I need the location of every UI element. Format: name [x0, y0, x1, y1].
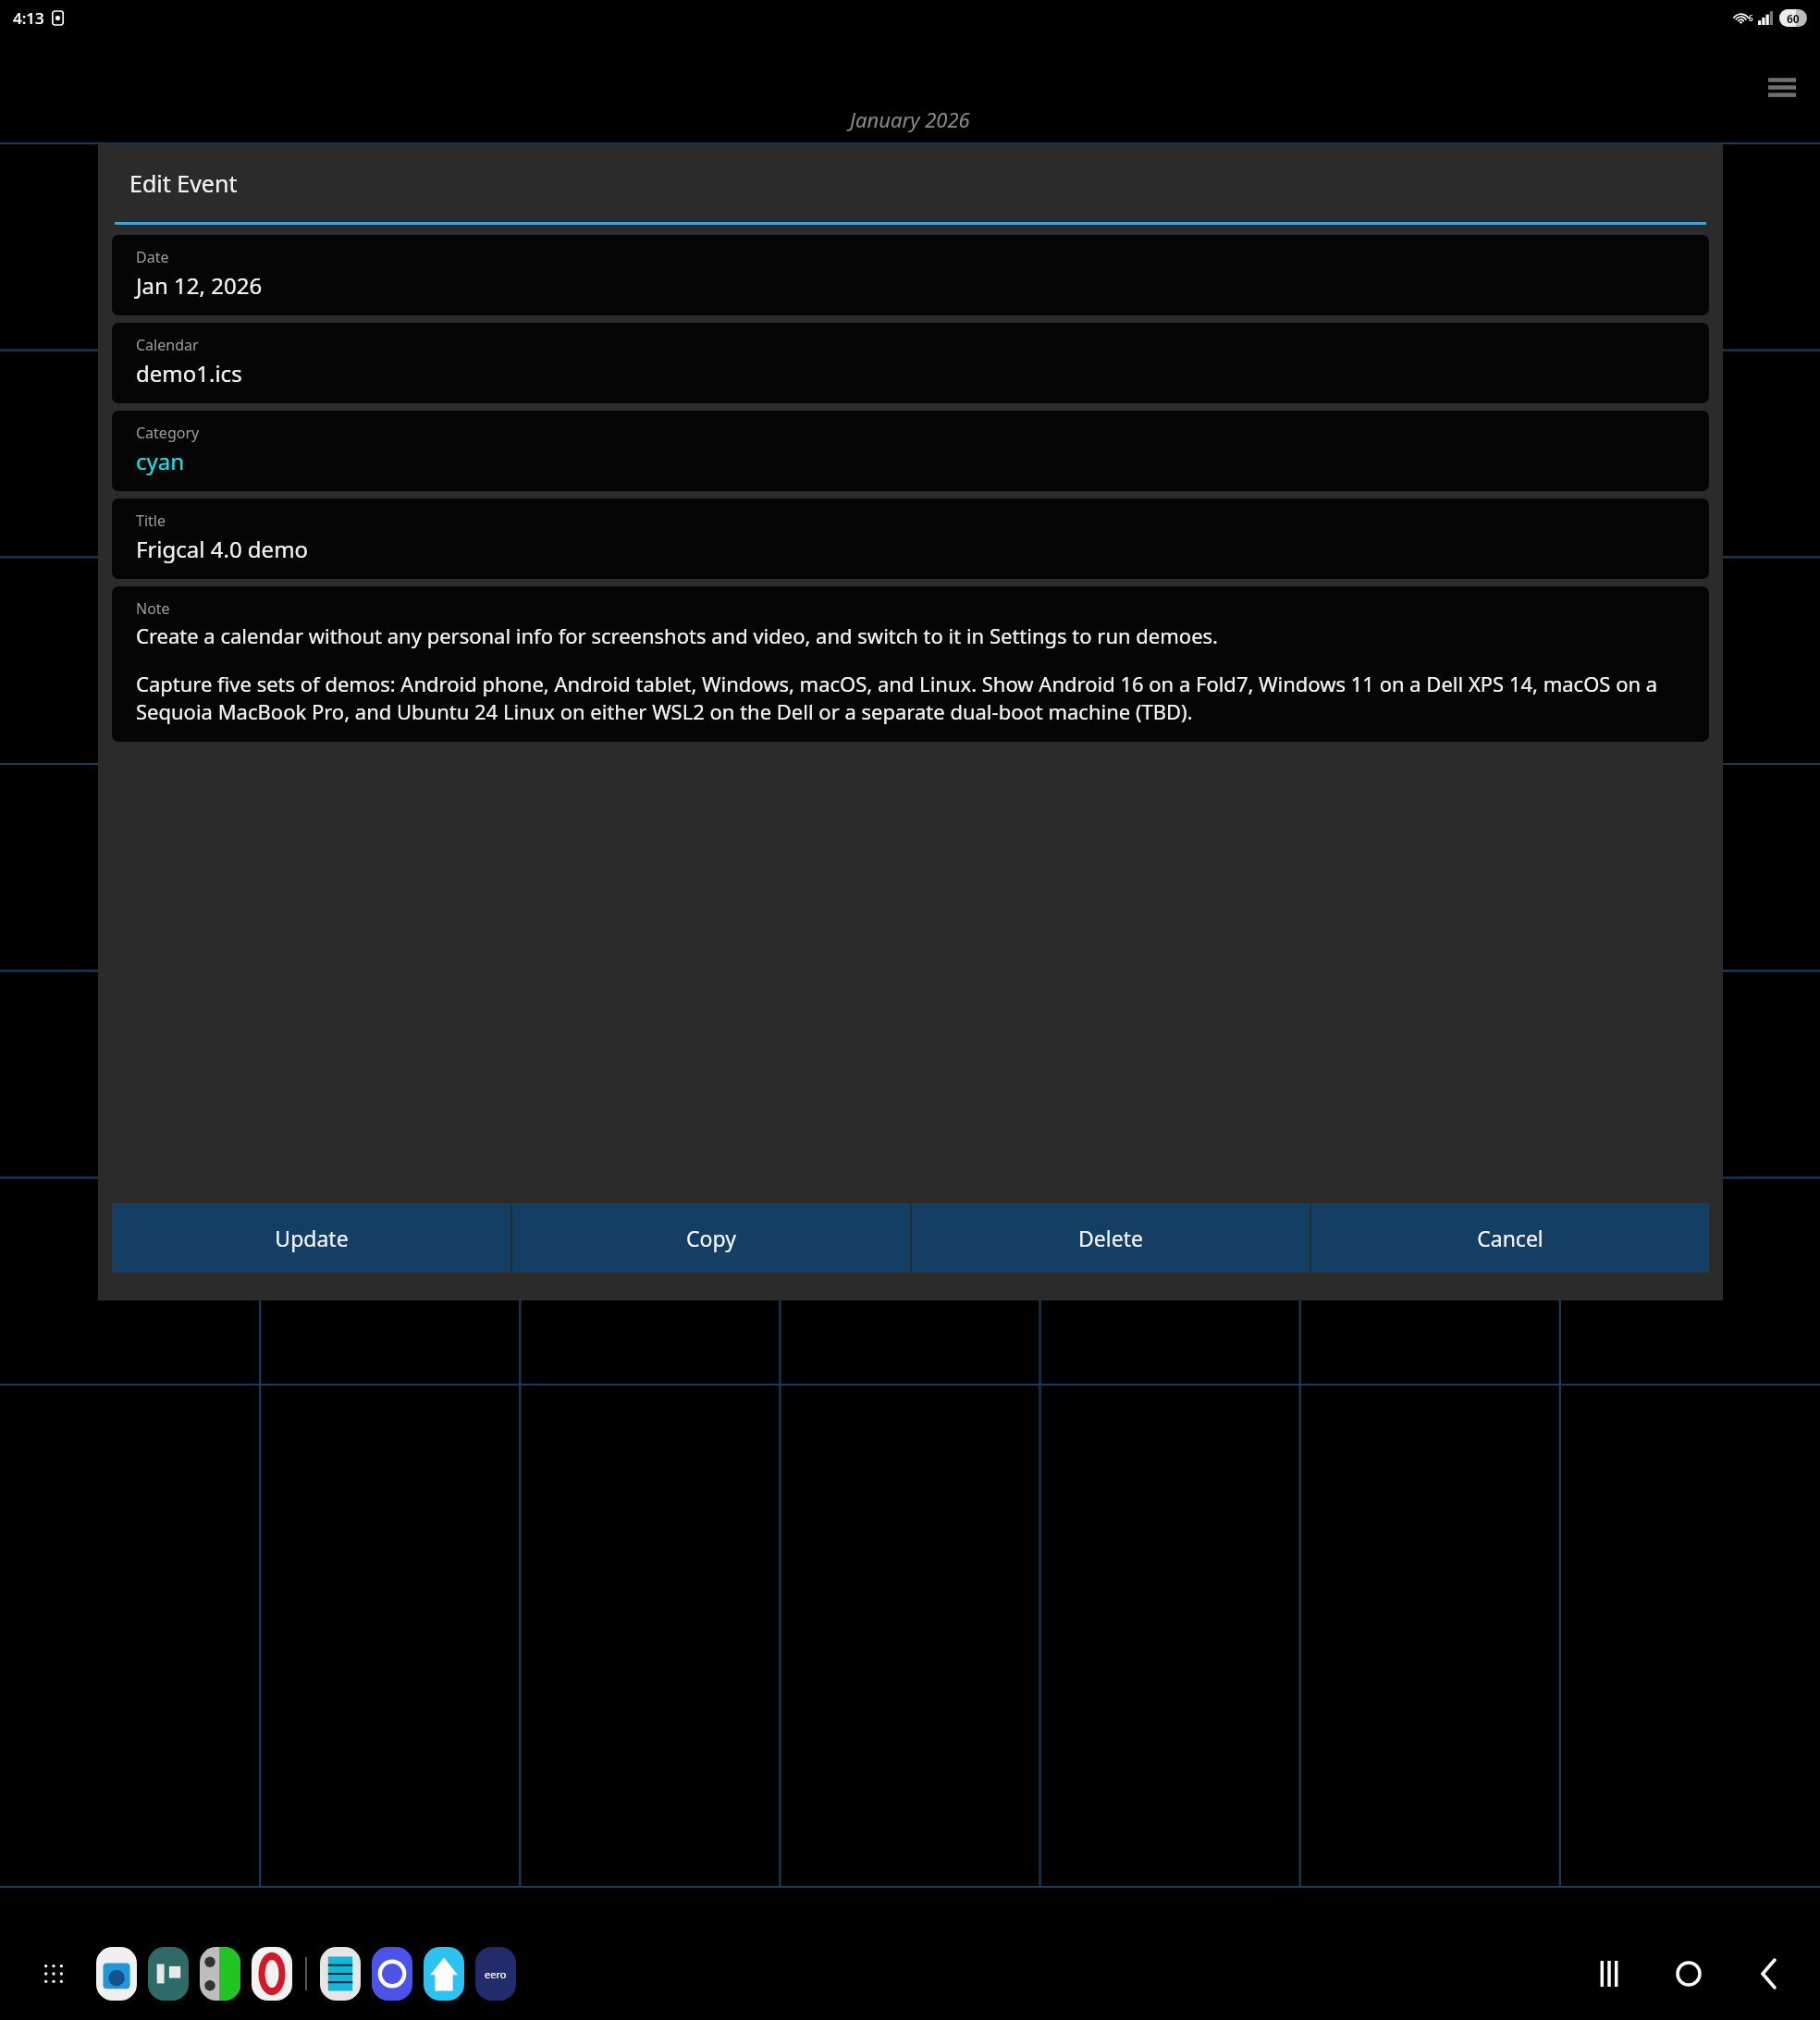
staticText: Delete [1078, 1224, 1143, 1252]
button[interactable]: eero [475, 1947, 516, 2001]
button[interactable]: Cancel [1311, 1203, 1709, 1273]
staticText: Date [136, 247, 169, 267]
button[interactable]: Qobuz [372, 1947, 412, 2001]
staticText: Title [136, 511, 166, 531]
button[interactable]: Sync [148, 1947, 189, 2001]
button[interactable]: Calculator [200, 1947, 240, 2001]
button[interactable]: Copy [512, 1203, 910, 1273]
staticText: demo1.ics [136, 358, 242, 388]
staticText: Calendar [136, 335, 199, 355]
staticText: January 2026 [850, 105, 970, 133]
button[interactable]: Calendar [112, 323, 1709, 403]
button[interactable]: Opera [252, 1947, 292, 2001]
staticText: Note [136, 598, 170, 619]
staticText: Create a calendar without any personal i… [136, 622, 1218, 649]
button[interactable]: All apps [30, 1950, 78, 1998]
button[interactable]: Home [1659, 1944, 1718, 2003]
button[interactable]: Menu [1761, 67, 1803, 109]
button[interactable]: Home [424, 1947, 464, 2001]
button[interactable]: Spreadsheet [320, 1947, 361, 2001]
staticText: Category [136, 423, 200, 443]
staticText: Frigcal 4.0 demo [136, 534, 309, 564]
button[interactable]: Recents [1580, 1944, 1639, 2003]
button[interactable]: Back [1739, 1944, 1798, 2003]
staticText: 6 [1749, 13, 1753, 23]
button[interactable]: CX File Explorer [96, 1947, 137, 2001]
button[interactable]: Title [112, 499, 1709, 579]
staticText: Edit Event [129, 167, 238, 199]
button[interactable]: Note [112, 586, 1709, 742]
staticText: eero [485, 1967, 507, 1981]
button[interactable]: Delete [912, 1203, 1310, 1273]
staticText: cyan [136, 446, 185, 476]
staticText: 4:13 [13, 7, 44, 29]
button[interactable]: Category [112, 411, 1709, 491]
staticText: Jan 12, 2026 [136, 270, 263, 301]
button[interactable]: Update [112, 1203, 510, 1273]
staticText: Copy [686, 1224, 736, 1252]
staticText: Update [275, 1224, 349, 1252]
staticText: 60 [1787, 11, 1800, 26]
staticText: Cancel [1477, 1224, 1543, 1252]
button[interactable]: Date [112, 235, 1709, 315]
staticText: Capture five sets of demos: Android phon… [136, 670, 1692, 725]
